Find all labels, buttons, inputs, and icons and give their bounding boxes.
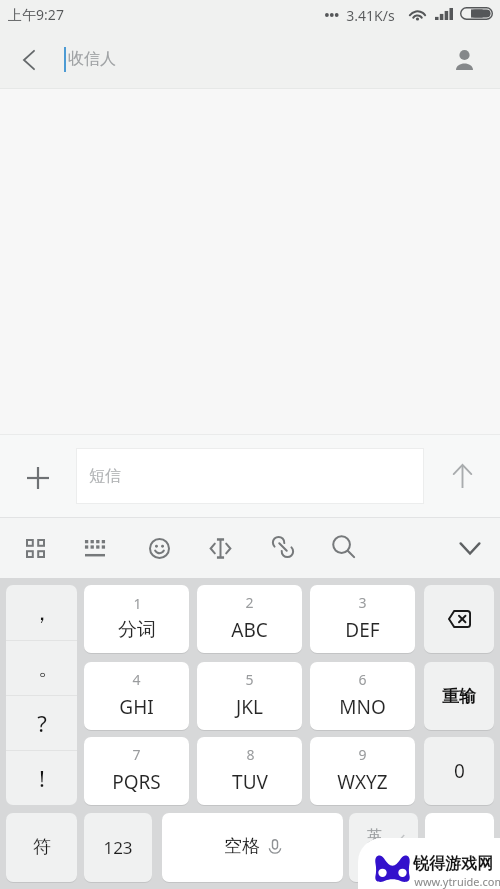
staticText: 7 <box>132 745 141 764</box>
button[interactable]: Send <box>432 446 492 506</box>
staticText: 收信人 <box>68 49 116 69</box>
staticText: 6 <box>358 670 367 689</box>
staticText: 锐得游戏网 <box>413 854 493 874</box>
button[interactable]: 4 <box>84 662 189 730</box>
staticText: 短信 <box>89 466 121 486</box>
staticText: 3.41K/s <box>346 6 395 25</box>
staticText: 123 <box>103 836 133 859</box>
button[interactable]: Search <box>322 525 366 569</box>
button[interactable]: Back <box>3 34 55 86</box>
button[interactable]: Cursor <box>198 526 242 570</box>
staticText: 2 <box>245 593 254 612</box>
staticText: 英 <box>367 827 382 846</box>
button[interactable]: ! <box>6 751 77 805</box>
staticText: ， <box>31 599 53 627</box>
staticText: 重输 <box>442 686 476 707</box>
staticText: 分词 <box>118 618 156 642</box>
staticText: 3 <box>358 593 367 612</box>
staticText: DEF <box>345 617 380 643</box>
staticText: TUV <box>232 769 268 795</box>
staticText: GHI <box>119 694 154 720</box>
button[interactable]: 5 <box>197 662 302 730</box>
staticText: www.ytruide.com <box>414 874 500 889</box>
button[interactable]: 1 <box>84 585 189 653</box>
staticText: PQRS <box>112 769 161 795</box>
button[interactable]: Keyboard <box>73 526 117 570</box>
button[interactable]: 123 <box>84 813 152 882</box>
button[interactable]: 空格 <box>162 813 343 882</box>
staticText: ! <box>39 763 45 793</box>
staticText: 空格 <box>224 835 260 858</box>
button[interactable]: 3 <box>310 585 415 653</box>
button[interactable]: 符 <box>6 813 77 882</box>
button[interactable]: Choose contact <box>438 34 490 86</box>
button[interactable]: 重输 <box>424 662 494 730</box>
staticText: 9 <box>358 745 367 764</box>
staticText: 5 <box>245 670 254 689</box>
button[interactable]: Add attachment <box>8 448 68 508</box>
button[interactable]: Hide keyboard <box>448 526 492 570</box>
button[interactable]: Link <box>261 525 305 569</box>
button[interactable]: ? <box>6 696 77 750</box>
staticText: 1 <box>133 594 142 613</box>
staticText: 确定 <box>443 837 477 858</box>
button[interactable]: Backspace <box>424 585 494 653</box>
button[interactable]: 。 <box>6 641 77 695</box>
button[interactable]: Grid <box>13 526 57 570</box>
staticText: ? <box>37 708 47 738</box>
staticText: JKL <box>236 694 263 720</box>
button[interactable]: 短信 <box>76 448 424 504</box>
button[interactable]: 6 <box>310 662 415 730</box>
staticText: MNO <box>339 694 386 720</box>
staticText: 上午9:27 <box>8 5 64 24</box>
staticText: ABC <box>231 617 268 643</box>
button[interactable]: 2 <box>197 585 302 653</box>
button[interactable]: Emoji <box>137 526 181 570</box>
button[interactable]: Switch input language <box>349 813 418 882</box>
staticText: 符 <box>33 836 51 859</box>
staticText: 。 <box>38 654 60 682</box>
staticText: 4 <box>132 670 141 689</box>
button[interactable]: 0 <box>424 737 494 805</box>
button[interactable]: 9 <box>310 737 415 805</box>
staticText: 8 <box>246 745 255 764</box>
button[interactable]: 8 <box>197 737 302 805</box>
button[interactable]: ， <box>6 585 77 640</box>
button[interactable]: 确定 <box>425 813 494 882</box>
button[interactable]: 7 <box>84 737 189 805</box>
staticText: 0 <box>454 758 465 784</box>
staticText: WXYZ <box>337 769 388 795</box>
